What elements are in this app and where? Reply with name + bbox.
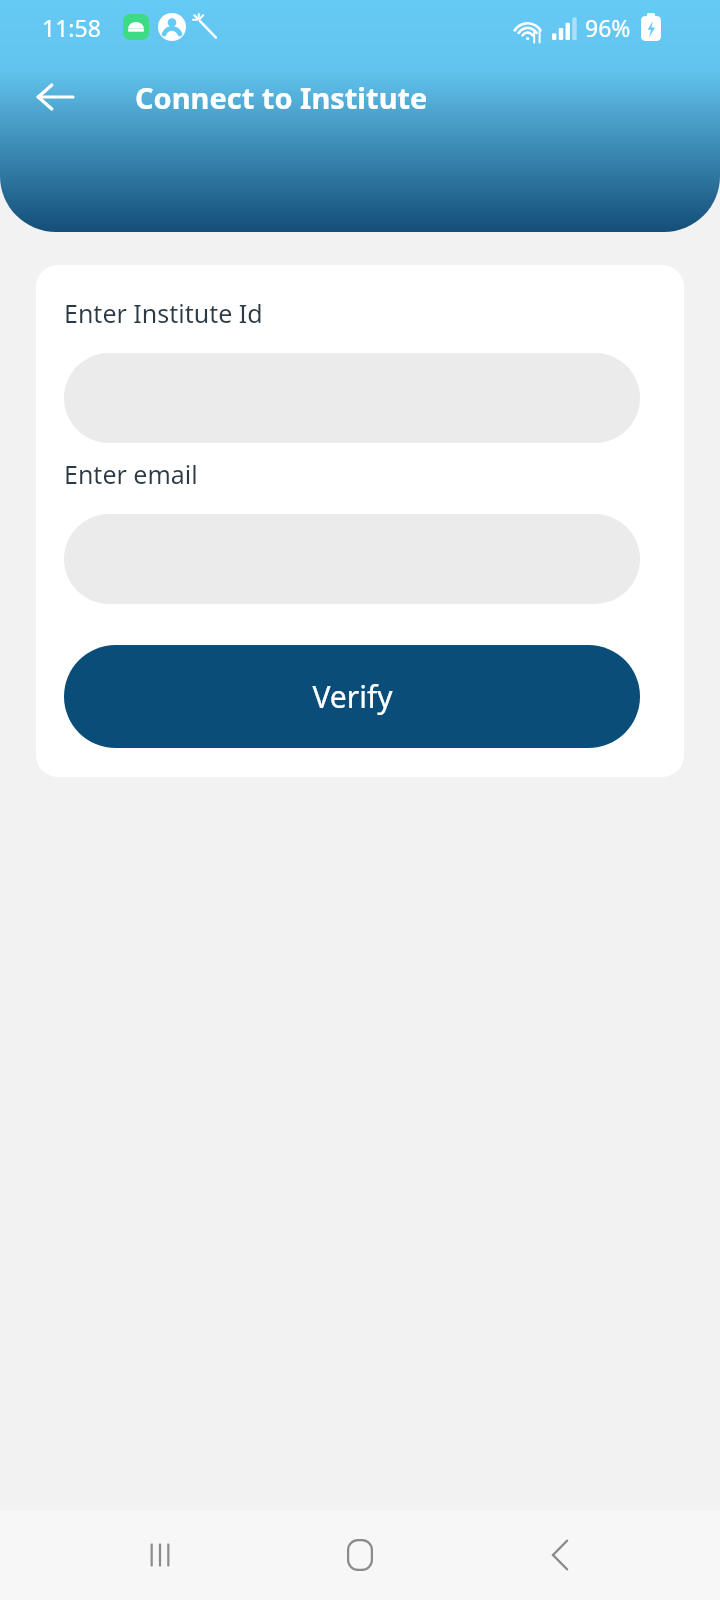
button[interactable]: Back <box>26 68 84 126</box>
staticText: Enter Institute Id <box>64 296 263 330</box>
staticText: 11:58 <box>42 12 101 43</box>
button[interactable]: Home <box>320 1515 400 1595</box>
staticText: Verify <box>312 676 393 717</box>
staticText: Connect to Institute <box>135 78 428 117</box>
button[interactable]: Institute Id field <box>64 353 640 443</box>
button[interactable]: Back <box>520 1515 600 1595</box>
staticText: 96% <box>585 12 631 43</box>
staticText: Enter email <box>64 457 198 491</box>
button[interactable]: Verify <box>64 645 640 748</box>
button[interactable]: Email field <box>64 514 640 604</box>
button[interactable]: Recent apps <box>120 1515 200 1595</box>
